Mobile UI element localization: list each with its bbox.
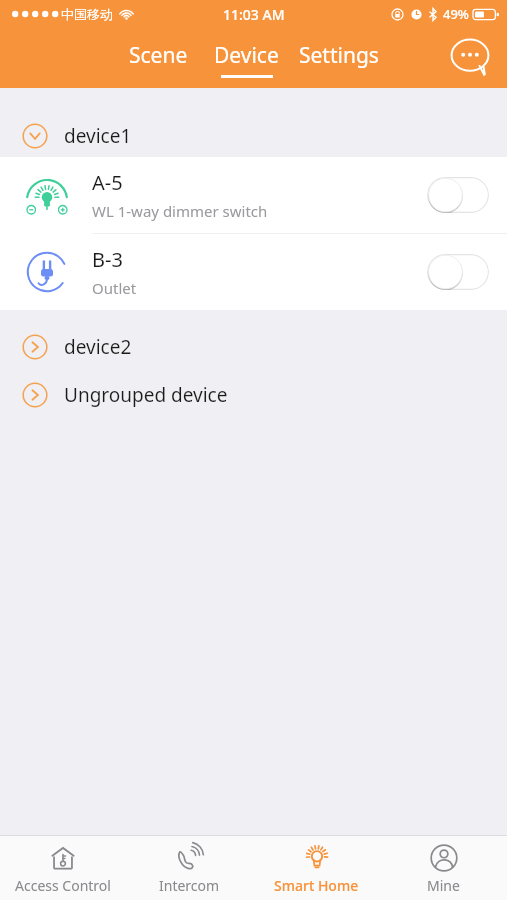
staticText: B-3 bbox=[92, 246, 123, 273]
staticText: WL 1-way dimmer switch bbox=[92, 201, 268, 221]
staticText: 中国移动 bbox=[61, 6, 113, 22]
button[interactable]: device2 bbox=[0, 323, 507, 371]
staticText: Intercom bbox=[159, 876, 220, 895]
button[interactable]: Intercom bbox=[126, 836, 253, 900]
staticText: Ungrouped device bbox=[64, 382, 228, 408]
button[interactable]: Mine bbox=[380, 836, 507, 900]
button[interactable]: Settings bbox=[293, 39, 385, 80]
staticText: 49% bbox=[443, 5, 469, 23]
button[interactable]: Device bbox=[208, 39, 285, 80]
button[interactable]: Messages bbox=[447, 35, 493, 81]
staticText: Smart Home bbox=[274, 876, 359, 895]
staticText: device1 bbox=[64, 123, 132, 149]
staticText: device2 bbox=[64, 334, 132, 360]
staticText: Outlet bbox=[92, 278, 137, 298]
button[interactable]: A-5 bbox=[0, 157, 507, 233]
staticText: Mine bbox=[427, 876, 460, 895]
staticText: Settings bbox=[299, 41, 379, 70]
button[interactable]: Ungrouped device bbox=[0, 371, 507, 419]
staticText: Device bbox=[214, 41, 279, 70]
button[interactable]: Access Control bbox=[0, 836, 126, 900]
button[interactable]: Toggle power bbox=[427, 254, 489, 290]
button[interactable]: Scene bbox=[123, 39, 194, 80]
button[interactable]: B-3 bbox=[0, 234, 507, 310]
staticText: A-5 bbox=[92, 169, 123, 196]
staticText: 11:03 AM bbox=[223, 5, 285, 24]
button[interactable]: Toggle power bbox=[427, 177, 489, 213]
staticText: Scene bbox=[129, 41, 188, 70]
button[interactable]: device1 bbox=[0, 115, 507, 157]
staticText: Access Control bbox=[15, 876, 111, 895]
button[interactable]: Smart Home bbox=[253, 836, 380, 900]
